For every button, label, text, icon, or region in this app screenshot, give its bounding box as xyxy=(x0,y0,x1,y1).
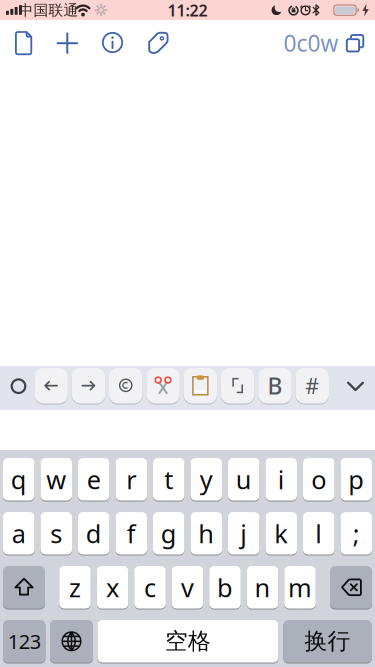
staticText: B xyxy=(267,371,282,401)
button[interactable]: Character and word count xyxy=(283,28,338,58)
button[interactable]: f xyxy=(115,512,147,554)
staticText: l xyxy=(315,516,322,550)
staticText: 空格 xyxy=(165,627,211,655)
staticText: # xyxy=(305,372,319,400)
button[interactable]: Tag xyxy=(0,0,375,667)
staticText: u xyxy=(236,462,252,496)
button[interactable]: l xyxy=(303,512,334,554)
button[interactable]: c xyxy=(134,566,166,608)
button[interactable]: g xyxy=(153,512,184,554)
staticText: 换行 xyxy=(304,627,350,655)
staticText: x xyxy=(106,570,119,604)
staticText: w xyxy=(46,462,66,496)
button[interactable]: k xyxy=(265,512,297,554)
staticText: j xyxy=(240,516,247,550)
button[interactable]: Numbers xyxy=(3,620,45,662)
button[interactable]: r xyxy=(115,458,147,501)
button[interactable]: Cut xyxy=(146,368,180,404)
staticText: i xyxy=(278,462,285,496)
staticText: t xyxy=(164,462,173,496)
button[interactable]: Copyright xyxy=(109,368,142,404)
staticText: c xyxy=(144,570,156,604)
button[interactable]: q xyxy=(3,458,34,501)
button[interactable]: b xyxy=(209,566,241,608)
button[interactable]: Info xyxy=(0,0,375,667)
button[interactable]: a xyxy=(3,512,34,554)
staticText: a xyxy=(12,516,26,550)
button[interactable]: y xyxy=(190,458,222,501)
button[interactable]: h xyxy=(190,512,222,554)
button[interactable]: s xyxy=(40,512,72,554)
button[interactable]: Dismiss keyboard xyxy=(0,0,375,667)
staticText: m xyxy=(288,570,312,604)
button[interactable]: New note xyxy=(0,0,375,667)
button[interactable]: 换行 xyxy=(283,620,372,662)
staticText: h xyxy=(198,516,214,550)
button[interactable]: Add xyxy=(0,0,375,667)
button[interactable]: Bold xyxy=(258,368,292,404)
staticText: k xyxy=(274,516,288,550)
button[interactable]: t xyxy=(153,458,184,501)
staticText: g xyxy=(161,516,177,550)
button[interactable]: Redo xyxy=(72,368,105,404)
button[interactable]: x xyxy=(97,566,128,608)
staticText: y xyxy=(200,462,213,496)
button[interactable]: 空格 xyxy=(97,620,278,662)
button[interactable]: Delete xyxy=(330,566,372,608)
staticText: n xyxy=(254,570,270,604)
staticText: f xyxy=(127,516,136,550)
button[interactable]: i xyxy=(265,458,297,501)
button[interactable]: u xyxy=(228,458,259,501)
button[interactable]: p xyxy=(340,458,372,501)
button[interactable]: Brackets xyxy=(221,368,254,404)
button[interactable]: Undo xyxy=(34,368,68,404)
staticText: b xyxy=(217,570,233,604)
button[interactable]: Expand xyxy=(0,0,375,667)
staticText: z xyxy=(69,570,81,604)
staticText: 0c0w xyxy=(283,28,338,58)
staticText: 中国联通 xyxy=(18,1,78,19)
staticText: s xyxy=(50,516,62,550)
button[interactable]: w xyxy=(40,458,72,501)
button[interactable]: m xyxy=(284,566,316,608)
button[interactable]: Shift xyxy=(3,566,45,608)
staticText: q xyxy=(11,462,27,496)
button[interactable]: Workflow xyxy=(0,0,375,667)
staticText: 123 xyxy=(8,628,41,655)
button[interactable]: ; xyxy=(340,512,372,554)
staticText: o xyxy=(311,462,326,496)
button[interactable]: Heading xyxy=(295,368,329,404)
button[interactable]: v xyxy=(172,566,203,608)
button[interactable]: e xyxy=(78,458,109,501)
staticText: 11:22 xyxy=(167,0,207,21)
staticText: v xyxy=(181,570,194,604)
button[interactable]: o xyxy=(303,458,334,501)
button[interactable]: n xyxy=(247,566,278,608)
button[interactable]: z xyxy=(59,566,91,608)
staticText: ; xyxy=(353,516,360,550)
button[interactable]: Next keyboard xyxy=(50,620,93,662)
staticText: p xyxy=(348,462,364,496)
button[interactable]: Paste xyxy=(184,368,217,404)
staticText: d xyxy=(86,516,102,550)
button[interactable]: d xyxy=(78,512,109,554)
staticText: r xyxy=(126,462,136,496)
button[interactable]: j xyxy=(228,512,259,554)
staticText: e xyxy=(87,462,101,496)
